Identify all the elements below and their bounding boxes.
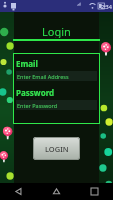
button[interactable]: LOGIN: [33, 137, 80, 160]
staticText: Enter Email Address: [17, 73, 69, 80]
staticText: Password: [16, 87, 55, 98]
button[interactable]: Recents: [75, 183, 113, 200]
button[interactable]: Enter Password: [16, 100, 97, 110]
staticText: Email: [16, 58, 38, 69]
staticText: LOGIN: [45, 144, 69, 154]
button[interactable]: Enter Email Address: [16, 71, 97, 81]
button[interactable]: Back: [0, 183, 37, 200]
staticText: Enter Password: [17, 102, 58, 109]
staticText: Login: [42, 24, 71, 38]
staticText: 2:34: [101, 3, 112, 10]
button[interactable]: Home: [37, 183, 75, 200]
